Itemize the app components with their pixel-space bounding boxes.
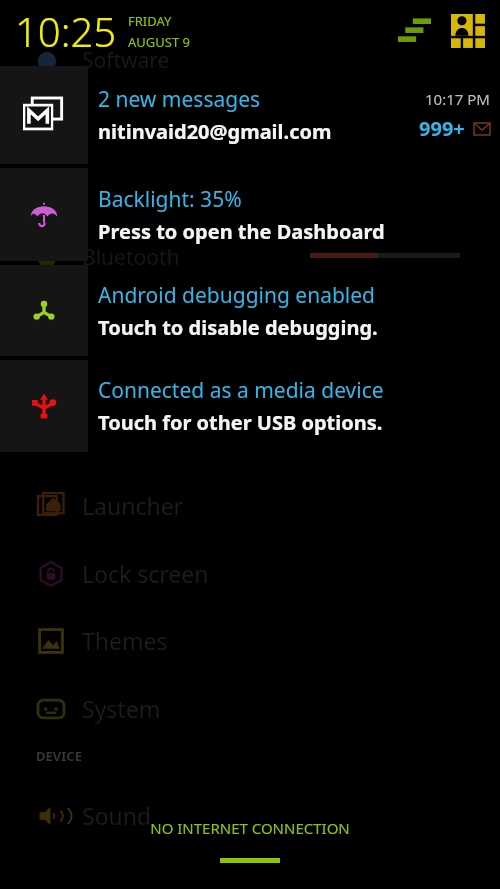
- staticText: 10:17 PM: [425, 89, 490, 109]
- staticText: Touch for other USB options.: [98, 409, 383, 436]
- staticText: FRIDAY: [128, 12, 172, 30]
- staticText: Touch to disable debugging.: [98, 314, 378, 341]
- staticText: 10:25: [15, 4, 117, 58]
- staticText: AUGUST 9: [128, 33, 190, 51]
- button[interactable]: 2 new messages: [0, 66, 500, 164]
- staticText: Android debugging enabled: [98, 281, 376, 310]
- staticText: 2 new messages: [98, 85, 261, 114]
- staticText: Software: [82, 46, 170, 75]
- staticText: 999+: [419, 115, 465, 142]
- button[interactable]: Connected as a media device: [0, 360, 500, 452]
- button[interactable]: Launcher: [0, 480, 500, 530]
- button[interactable]: User profile: [444, 7, 492, 55]
- staticText: Backlight: 35%: [98, 185, 242, 214]
- staticText: System: [82, 693, 161, 724]
- button[interactable]: Backlight: 35%: [0, 168, 500, 261]
- staticText: NO INTERNET CONNECTION: [150, 818, 350, 838]
- button[interactable]: Sound: [0, 790, 500, 840]
- button[interactable]: Themes: [0, 615, 500, 665]
- staticText: Connected as a media device: [98, 376, 384, 405]
- staticText: Themes: [82, 625, 168, 656]
- button[interactable]: System: [0, 683, 500, 733]
- button[interactable]: Lock screen: [0, 548, 500, 598]
- staticText: Launcher: [82, 490, 184, 521]
- staticText: Lock screen: [82, 558, 209, 589]
- staticText: nitinvaid20@gmail.com: [98, 118, 332, 145]
- staticText: Sound: [82, 800, 152, 831]
- staticText: Bluetooth: [82, 243, 180, 272]
- staticText: DEVICE: [36, 747, 82, 765]
- button[interactable]: Quick settings: [390, 7, 438, 55]
- staticText: Press to open the Dashboard: [98, 218, 385, 245]
- button[interactable]: Android debugging enabled: [0, 265, 500, 356]
